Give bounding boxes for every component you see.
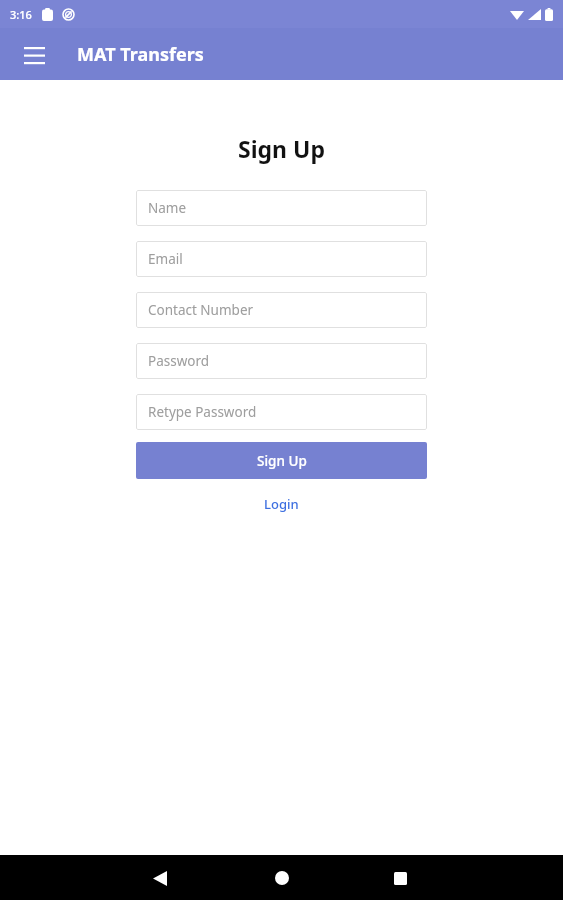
staticText: Sign Up xyxy=(0,133,563,164)
button[interactable]: Back xyxy=(138,856,182,900)
button[interactable]: Name xyxy=(136,190,427,226)
staticText: MAT Transfers xyxy=(77,42,204,67)
button[interactable]: Retype Password xyxy=(136,394,427,430)
button[interactable]: Email xyxy=(136,241,427,277)
button[interactable]: Login xyxy=(136,491,427,517)
button[interactable]: Contact Number xyxy=(136,292,427,328)
staticText: 3:16 xyxy=(10,7,32,22)
button[interactable]: Sign Up xyxy=(136,442,427,479)
staticText: Contact Number xyxy=(148,301,254,319)
staticText: Retype Password xyxy=(148,403,257,421)
button[interactable]: Home xyxy=(260,856,304,900)
button[interactable]: Open navigation menu xyxy=(12,32,56,76)
staticText: Login xyxy=(264,495,299,513)
staticText: Email xyxy=(148,250,183,268)
staticText: Password xyxy=(148,352,210,370)
staticText: Sign Up xyxy=(257,452,307,470)
button[interactable]: Password xyxy=(136,343,427,379)
button[interactable]: Recent apps xyxy=(378,856,422,900)
staticText: Name xyxy=(148,199,187,217)
